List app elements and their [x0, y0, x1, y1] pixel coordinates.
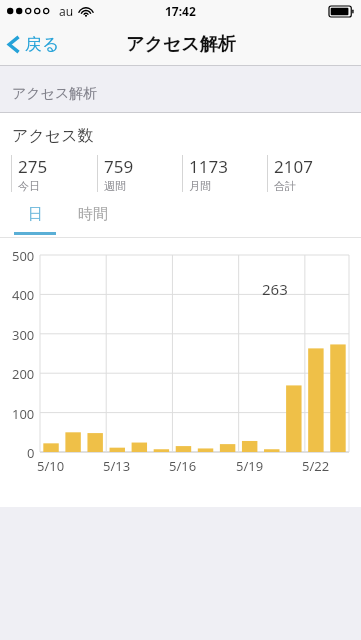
staticText: 日 [28, 205, 43, 224]
staticText: アクセス解析 [12, 85, 98, 103]
staticText: 週間 [104, 179, 126, 192]
staticText: 759 [104, 155, 134, 178]
staticText: 5/22 [302, 457, 330, 475]
staticText: au [59, 3, 74, 19]
staticText: 400 [12, 286, 35, 304]
staticText: アクセス数 [12, 126, 94, 146]
staticText: 0 [27, 444, 35, 462]
staticText: 時間 [78, 205, 108, 224]
staticText: 5/13 [103, 457, 131, 475]
staticText: 戻る [25, 34, 60, 55]
staticText: 1173 [189, 155, 228, 178]
staticText: 275 [18, 155, 48, 178]
staticText: 200 [12, 365, 35, 383]
staticText: 5/19 [236, 457, 264, 475]
staticText: 500 [12, 247, 35, 265]
staticText: 300 [12, 326, 35, 344]
button[interactable]: 時間 [70, 205, 116, 224]
staticText: 今日 [18, 179, 40, 192]
staticText: 263 [262, 279, 288, 299]
button[interactable]: 日 [14, 205, 56, 235]
staticText: 100 [12, 405, 35, 423]
staticText: 月間 [189, 179, 211, 192]
staticText: 5/10 [37, 457, 65, 475]
staticText: アクセス解析 [126, 33, 236, 56]
staticText: 2107 [274, 155, 313, 178]
staticText: 17:42 [165, 3, 196, 19]
staticText: 5/16 [169, 457, 197, 475]
button[interactable]: 戻る [0, 22, 72, 66]
staticText: 合計 [274, 179, 296, 192]
